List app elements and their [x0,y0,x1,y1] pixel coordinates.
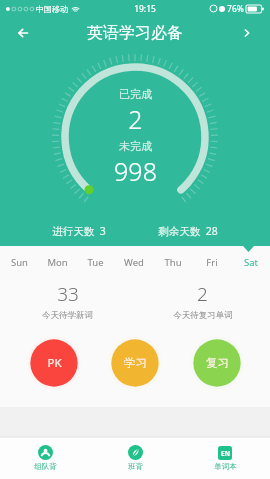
staticText: 今天待复习单词 [173,310,233,321]
staticText: 中国移动 [36,4,68,14]
button[interactable]: Back [8,17,40,49]
staticText: Fri [206,256,218,269]
button[interactable]: PK [26,335,82,391]
staticText: Sun [11,256,28,269]
staticText: 2 [197,281,208,307]
staticText: Sat [244,256,258,269]
staticText: 单词本 [214,462,237,471]
button[interactable]: Wed [114,256,153,269]
staticText: 剩余天数 28 [158,224,218,238]
staticText: 2 [128,102,143,136]
staticText: Mon [47,256,68,269]
staticText: 19:15 [134,3,156,15]
staticText: Thu [164,256,182,269]
staticText: Tue [87,256,104,269]
staticText: 已完成 [119,87,152,101]
button[interactable]: Mon [38,256,76,269]
staticText: 英语学习必备 [87,23,183,43]
staticText: 76% [227,3,244,15]
button[interactable]: Sun [0,256,38,269]
staticText: 学习 [124,356,147,370]
staticText: EN [221,449,230,458]
staticText: Wed [124,256,144,269]
button[interactable]: 组队背 [0,437,90,479]
button[interactable]: 复习 [189,335,245,391]
staticText: 复习 [206,356,229,370]
button[interactable]: Sat [231,256,270,269]
button[interactable]: More [232,18,262,48]
button[interactable]: Tue [76,256,114,269]
button[interactable]: EN [180,437,270,479]
staticText: 班背 [128,462,143,471]
button[interactable]: 班背 [90,437,180,479]
button[interactable]: Thu [153,256,192,269]
staticText: 进行天数 3 [52,224,106,238]
staticText: PK [47,355,62,371]
button[interactable]: 33 [0,281,135,321]
staticText: 未完成 [119,139,152,153]
staticText: 组队背 [34,462,57,471]
staticText: 33 [57,281,79,307]
button[interactable]: 2 [135,281,270,321]
staticText: 今天待学新词 [42,310,93,321]
staticText: 998 [114,154,157,188]
button[interactable]: 学习 [107,335,163,391]
button[interactable]: Fri [192,256,231,269]
